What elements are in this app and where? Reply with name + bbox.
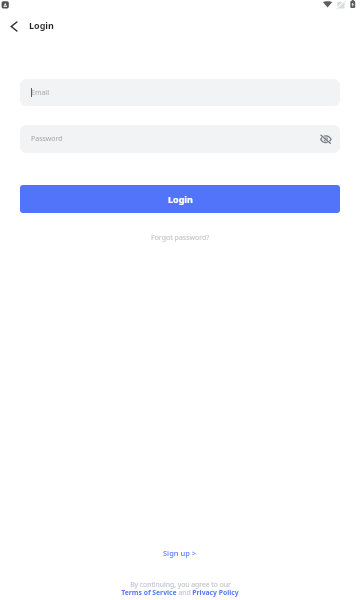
staticText: Sign up > [163,548,197,558]
staticText: Login [168,193,193,205]
button[interactable]: Forgot password? [0,229,360,246]
button[interactable]: Sign up > [0,544,360,562]
button[interactable]: Login [20,185,340,213]
staticText: Password [31,134,63,144]
staticText: By continuing, you agree to our [130,580,231,589]
button[interactable]: Password [20,125,340,153]
button[interactable]: Email [20,79,340,106]
button[interactable]: Show password [318,131,334,147]
staticText: Login [29,19,54,31]
button[interactable]: Terms of Service and Privacy Policy [0,587,360,598]
button[interactable]: Back [4,16,24,36]
staticText: Forgot password? [151,233,210,243]
staticText: Email [31,88,49,98]
staticText: Terms of Service and Privacy Policy [121,588,239,597]
